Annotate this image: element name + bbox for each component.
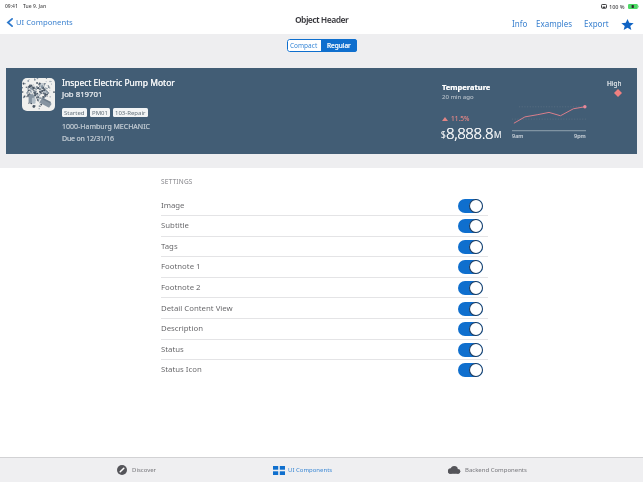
staticText: Status Icon (161, 364, 202, 375)
button[interactable]: Regular (321, 39, 357, 52)
staticText: Regular (327, 41, 351, 50)
button[interactable]: Toggle (458, 219, 483, 233)
staticText: PM01 (92, 109, 108, 117)
staticText: Subtitle (161, 220, 189, 231)
staticText: Object Header (295, 14, 349, 26)
staticText: Compact (290, 41, 318, 50)
button[interactable]: Discover (117, 464, 157, 476)
staticText: 20 min ago (442, 93, 474, 101)
button[interactable]: Detail Content View (161, 299, 488, 318)
staticText: Backend Components (465, 466, 527, 474)
button[interactable]: Favorite (621, 18, 634, 31)
staticText: M (494, 129, 502, 141)
staticText: Footnote 1 (161, 261, 201, 272)
staticText: Footnote 2 (161, 282, 201, 293)
staticText: UI Components (288, 466, 333, 474)
button[interactable]: Toggle (458, 281, 483, 295)
staticText: 9am (512, 132, 524, 139)
staticText: 9pm (574, 132, 586, 139)
button[interactable]: UI Components (7, 17, 73, 27)
staticText: Image (161, 200, 185, 211)
button[interactable]: Info (511, 15, 529, 32)
staticText: 1000-Hamburg MECHANIC (62, 122, 150, 132)
staticText: Examples (536, 18, 572, 29)
staticText: Description (161, 323, 203, 334)
button[interactable]: Status (161, 340, 488, 359)
staticText: Tags (161, 241, 178, 252)
button[interactable]: Toggle (458, 343, 483, 357)
staticText: 11.5% (451, 114, 470, 123)
staticText: Discover (132, 466, 157, 474)
staticText: Started (64, 109, 85, 117)
staticText: Info (512, 18, 528, 29)
button[interactable]: Toggle (458, 363, 483, 377)
button[interactable]: Toggle (458, 302, 483, 316)
staticText: SETTINGS (161, 177, 193, 186)
button[interactable]: Compact (287, 39, 321, 52)
button[interactable]: Export (583, 15, 610, 32)
staticText: 09:41 (5, 3, 18, 10)
staticText: $ (441, 129, 446, 141)
staticText: Export (584, 18, 609, 29)
staticText: 8,888.8 (446, 123, 494, 143)
button[interactable]: Footnote 1 (161, 257, 488, 276)
button[interactable]: Description (161, 319, 488, 338)
button[interactable]: UI Components (273, 464, 333, 476)
button[interactable]: Subtitle (161, 216, 488, 235)
staticText: Detail Content View (161, 303, 233, 314)
button[interactable]: Status Icon (161, 360, 488, 379)
button[interactable]: Tags (161, 237, 488, 256)
button[interactable]: Toggle (458, 260, 483, 274)
staticText: Due on 12/31/16 (62, 134, 114, 144)
button[interactable]: Inspect Electric Pump Motor (6, 68, 637, 154)
button[interactable]: Examples (535, 15, 573, 32)
staticText: Temperature (442, 82, 491, 92)
staticText: High (607, 79, 622, 88)
button[interactable]: Toggle (458, 240, 483, 254)
staticText: 103-Repair (115, 109, 146, 117)
staticText: Status (161, 344, 184, 355)
staticText: UI Components (16, 17, 73, 27)
button[interactable]: Image (161, 196, 488, 215)
button[interactable]: Backend Components (447, 464, 527, 476)
staticText: Inspect Electric Pump Motor (62, 77, 175, 89)
staticText: Tue 9. Jan (23, 3, 47, 10)
button[interactable]: Footnote 2 (161, 278, 488, 297)
button[interactable]: Toggle (458, 199, 483, 213)
staticText: 100 % (609, 3, 625, 10)
button[interactable]: Toggle (458, 322, 483, 336)
staticText: Job 819701 (62, 89, 103, 100)
